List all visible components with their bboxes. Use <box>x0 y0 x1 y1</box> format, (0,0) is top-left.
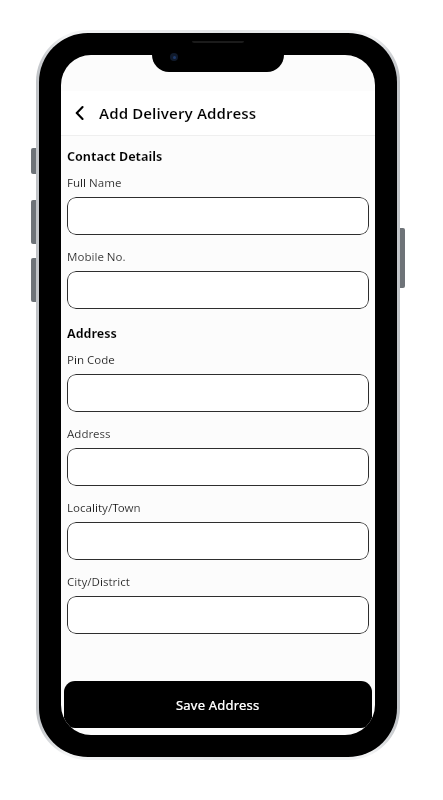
staticText: Locality/Town <box>67 500 141 516</box>
staticText: City/District <box>67 574 130 590</box>
button[interactable] <box>67 271 369 309</box>
staticText: Address <box>67 426 111 442</box>
button[interactable] <box>67 374 369 412</box>
staticText: Pin Code <box>67 352 115 368</box>
staticText: Mobile No. <box>67 249 126 265</box>
button[interactable] <box>67 522 369 560</box>
button[interactable] <box>67 197 369 235</box>
button[interactable]: Back <box>65 98 95 128</box>
staticText: Contact Details <box>67 148 163 165</box>
button[interactable]: Save Address <box>64 681 372 728</box>
button[interactable] <box>67 448 369 486</box>
staticText: Save Address <box>176 696 260 714</box>
staticText: Full Name <box>67 175 122 191</box>
staticText: Address <box>67 325 117 342</box>
button[interactable] <box>67 596 369 634</box>
staticText: Add Delivery Address <box>99 103 257 123</box>
